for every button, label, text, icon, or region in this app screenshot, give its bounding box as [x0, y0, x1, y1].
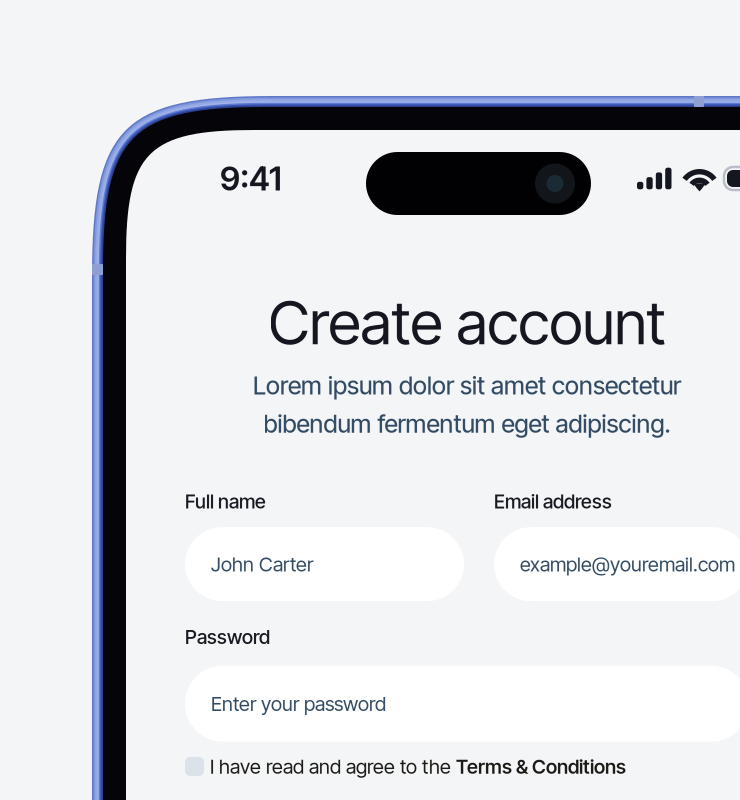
button[interactable]: John Carter: [185, 527, 464, 601]
button[interactable]: I have read and agree to the Terms & Con…: [126, 755, 740, 778]
staticText: Create account: [268, 286, 665, 359]
staticText: John Carter: [211, 552, 313, 576]
staticText: bibendum fermentum eget adipiscing.: [263, 409, 670, 439]
staticText: I have read and agree to the Terms & Con…: [210, 755, 626, 778]
button[interactable]: Enter your password: [185, 666, 740, 742]
staticText: 9:41: [220, 159, 282, 198]
staticText: Enter your password: [211, 692, 386, 716]
staticText: Password: [185, 625, 270, 649]
button[interactable]: example@youremail.com: [494, 527, 740, 601]
staticText: Lorem ipsum dolor sit amet consectetur: [253, 371, 681, 401]
staticText: example@youremail.com: [520, 552, 735, 576]
staticText: Full name: [185, 490, 266, 513]
staticText: Email address: [494, 490, 612, 513]
